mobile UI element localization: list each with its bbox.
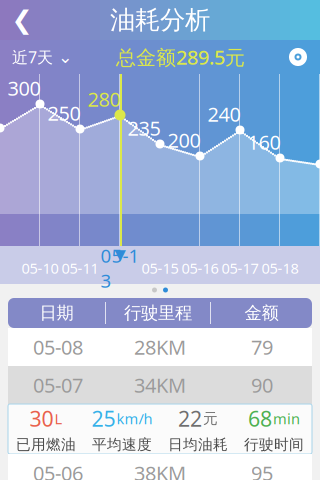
staticText: 日均油耗	[168, 436, 228, 454]
staticText: L	[54, 409, 62, 428]
button[interactable]: Settings	[276, 40, 320, 74]
staticText: ▾	[114, 241, 125, 267]
button[interactable]: 05-08	[8, 328, 312, 366]
staticText: 28KM	[134, 334, 186, 360]
staticText: 05-06	[33, 460, 83, 480]
button[interactable]: Back	[0, 0, 44, 40]
staticText: 金额	[244, 302, 278, 324]
button[interactable]: 05-17	[220, 249, 260, 287]
staticText: 已用燃油	[16, 436, 76, 454]
staticText: 300	[7, 75, 40, 101]
staticText: 160	[247, 129, 280, 155]
button[interactable]: 05-13	[100, 249, 140, 287]
button[interactable]: 05-15	[140, 249, 180, 287]
staticText: 22	[178, 404, 202, 433]
button[interactable]: 05-07	[8, 366, 312, 404]
staticText: ❮	[11, 6, 32, 34]
staticText: 90	[251, 372, 273, 398]
staticText: 38KM	[134, 460, 186, 480]
staticText: 200	[167, 127, 200, 153]
staticText: 05-17	[221, 258, 258, 278]
staticText: 05-13	[100, 243, 139, 293]
staticText: 行驶里程	[124, 302, 192, 324]
staticText: 79	[251, 334, 273, 360]
staticText: 近7天	[12, 46, 53, 68]
staticText: 油耗分析	[110, 4, 210, 35]
staticText: 250	[47, 100, 80, 126]
staticText: 34KM	[134, 372, 186, 398]
button[interactable]: 05-10	[20, 249, 60, 287]
staticText: ⌄	[58, 47, 73, 67]
staticText: 05-18	[261, 258, 298, 278]
staticText: 95	[251, 460, 273, 480]
staticText: 05-15	[141, 258, 178, 278]
staticText: 68	[248, 404, 272, 433]
button[interactable]: 05-16	[180, 249, 220, 287]
staticText: 05-07	[33, 372, 83, 398]
button[interactable]: 05-18	[260, 249, 300, 287]
staticText: 4:21 PM	[154, 0, 214, 1]
button[interactable]: 近7天	[0, 40, 85, 74]
staticText: 元	[203, 409, 218, 427]
staticText: km/h	[116, 409, 152, 428]
staticText: 总金额289.5元	[116, 44, 245, 70]
staticText: 280	[87, 86, 120, 112]
staticText: 05-16	[181, 258, 218, 278]
staticText: 行驶时间	[244, 436, 304, 454]
staticText: 05-11	[61, 258, 98, 278]
staticText: 平均速度	[92, 436, 152, 454]
staticText: 05-08	[33, 334, 83, 360]
staticText: min	[273, 409, 300, 428]
staticText: 30	[29, 404, 53, 433]
staticText: 日期	[39, 302, 73, 324]
staticText: 25	[91, 404, 115, 433]
staticText: 240	[207, 101, 240, 127]
button[interactable]: 05-06	[8, 454, 312, 480]
staticText: 05-10	[21, 258, 58, 278]
button[interactable]: 05-11	[60, 249, 100, 287]
staticText: 235	[127, 115, 160, 141]
